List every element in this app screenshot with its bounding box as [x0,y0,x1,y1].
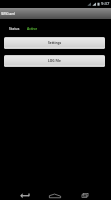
staticText: Active [27,27,38,31]
button[interactable]: LOG File [4,55,105,67]
staticText: Status [9,27,20,31]
button[interactable]: Settings [4,37,105,49]
button[interactable]: Status [5,26,23,31]
button[interactable]: Back [14,189,36,200]
button[interactable]: Recent apps [74,189,96,200]
button[interactable]: Home [44,189,66,200]
staticText: SMSGuard [1,12,15,16]
staticText: LOG File [48,59,61,63]
staticText: Settings [48,41,62,45]
staticText: 9:37 [101,1,110,7]
button[interactable]: Active [23,26,41,31]
